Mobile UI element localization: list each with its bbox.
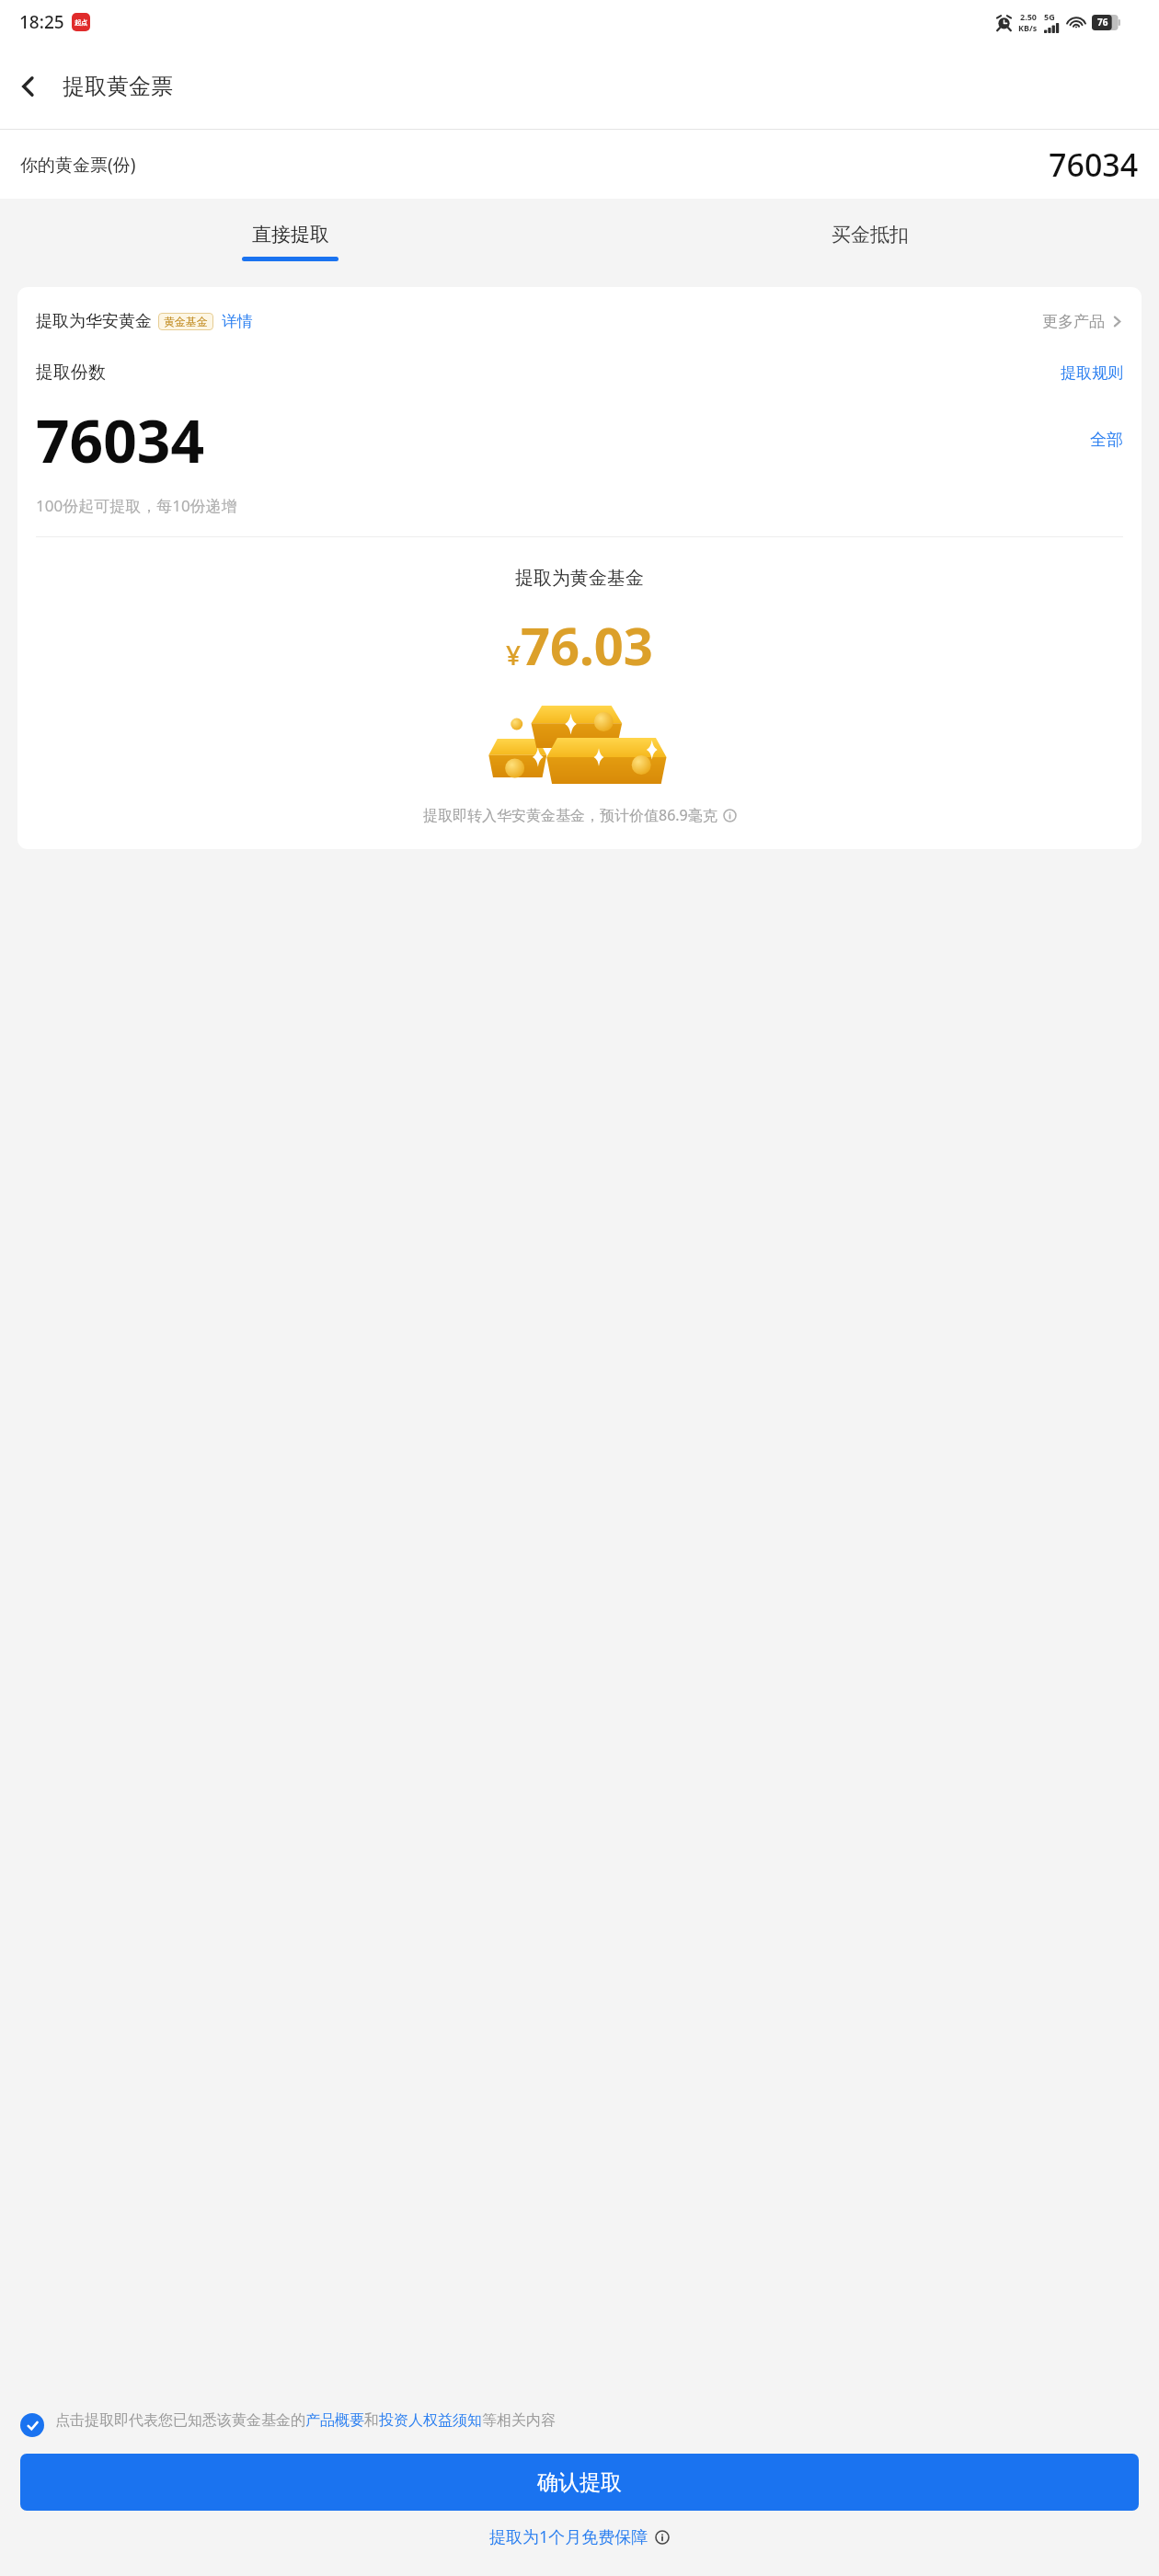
other: Agree checkbox bbox=[20, 2413, 44, 2437]
staticText: KB/s bbox=[1018, 22, 1038, 33]
staticText: 提取即转入华安黄金基金，预计价值86.9毫克 bbox=[423, 805, 717, 825]
button[interactable]: Back bbox=[0, 58, 57, 115]
staticText: 提取份数 bbox=[36, 362, 106, 384]
staticText: 提取为黄金基金 bbox=[17, 567, 1142, 590]
staticText: 起点 bbox=[75, 18, 87, 27]
staticText: 76034 bbox=[36, 400, 205, 480]
staticText: 确认提取 bbox=[537, 2469, 622, 2496]
staticText: 5G bbox=[1044, 11, 1055, 22]
button[interactable]: 直接提取 bbox=[0, 206, 579, 278]
staticText: ¥76.03 bbox=[506, 610, 653, 680]
button[interactable]: 买金抵扣 bbox=[579, 206, 1159, 278]
staticText: 76 bbox=[1097, 16, 1108, 29]
staticText: 黄金基金 bbox=[164, 315, 208, 328]
button[interactable]: 提取为1个月免费保障 bbox=[0, 2525, 1159, 2548]
staticText: 提取规则 bbox=[1061, 363, 1123, 383]
button[interactable]: 更多产品 bbox=[1042, 312, 1123, 331]
staticText: 提取黄金票 bbox=[63, 73, 173, 100]
button[interactable]: 详情 bbox=[222, 312, 253, 331]
staticText: 18:25 bbox=[19, 10, 64, 34]
button[interactable]: Agree checkbox bbox=[0, 2411, 1159, 2437]
staticText: 更多产品 bbox=[1042, 312, 1105, 331]
staticText: 你的黄金票(份) bbox=[20, 153, 136, 177]
button[interactable]: 全部 bbox=[1090, 430, 1123, 451]
staticText: 点击提取即代表您已知悉该黄金基金的产品概要和投资人权益须知等相关内容 bbox=[55, 2411, 556, 2430]
button[interactable]: 确认提取 bbox=[20, 2454, 1139, 2511]
staticText: 100份起可提取，每10份递增 bbox=[36, 495, 237, 516]
staticText: 提取为华安黄金 bbox=[36, 311, 152, 332]
staticText: 2.50 bbox=[1020, 11, 1037, 22]
staticText: 直接提取 bbox=[252, 223, 329, 247]
staticText: 详情 bbox=[222, 312, 253, 331]
staticText: 提取为1个月免费保障 bbox=[489, 2525, 648, 2548]
staticText: 全部 bbox=[1090, 430, 1123, 451]
button[interactable]: 提取规则 bbox=[1061, 363, 1123, 383]
staticText: 买金抵扣 bbox=[832, 223, 909, 247]
staticText: 76034 bbox=[1049, 144, 1139, 186]
